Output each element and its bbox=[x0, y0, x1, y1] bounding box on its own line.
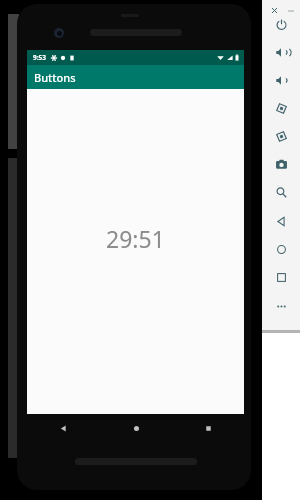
staticText: 29:51 bbox=[106, 223, 165, 254]
button[interactable]: Close bbox=[269, 5, 280, 16]
button[interactable]: Home bbox=[100, 414, 172, 442]
staticText: 9:53 bbox=[33, 53, 46, 62]
button[interactable]: Home bbox=[271, 239, 291, 259]
button[interactable]: Recent apps bbox=[172, 414, 244, 442]
button[interactable]: Volume up bbox=[271, 42, 291, 62]
button[interactable]: Overview bbox=[271, 267, 291, 287]
button[interactable]: Power bbox=[271, 14, 291, 34]
button[interactable]: Zoom bbox=[271, 182, 291, 202]
staticText: Buttons bbox=[34, 70, 76, 85]
button[interactable]: Volume down bbox=[271, 70, 291, 90]
button[interactable]: Minimise bbox=[285, 5, 296, 16]
button[interactable]: Rotate left bbox=[271, 98, 291, 118]
button[interactable]: Rotate right bbox=[271, 126, 291, 146]
button[interactable]: Back bbox=[27, 414, 100, 442]
button[interactable]: Take screenshot bbox=[271, 154, 291, 174]
button[interactable]: Buttons bbox=[27, 65, 244, 89]
button[interactable]: Back bbox=[271, 211, 291, 231]
button[interactable]: More bbox=[271, 296, 291, 316]
